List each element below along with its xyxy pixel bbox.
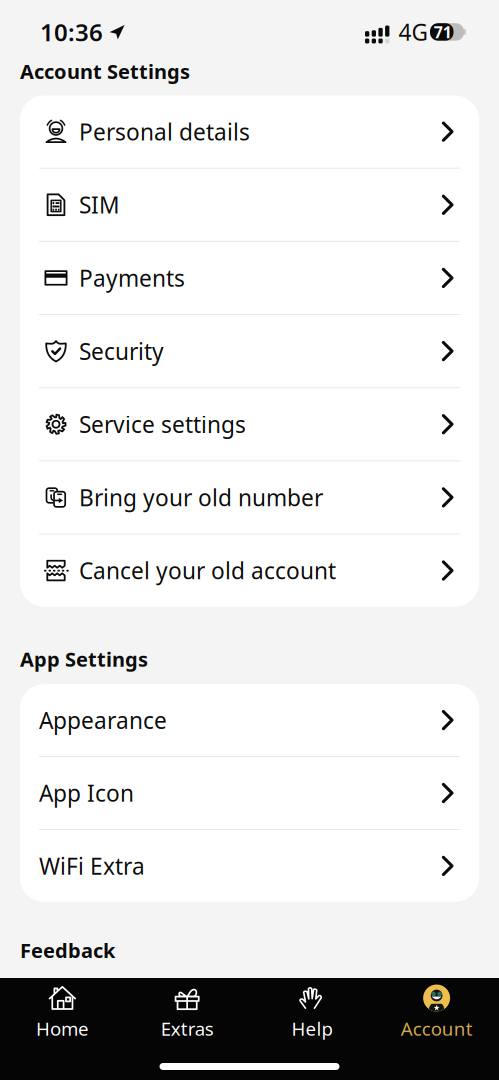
button[interactable]: Security [20,315,479,387]
staticText: Service settings [79,409,246,439]
staticText: Help [291,1016,332,1041]
staticText: Payments [79,263,185,293]
button[interactable]: App Icon [20,757,479,829]
staticText: Home [36,1016,89,1041]
button[interactable]: Bring your old number [20,461,479,533]
staticText: 71 [434,21,452,42]
button[interactable]: Help [249,985,374,1041]
button[interactable]: Extras [125,985,250,1041]
staticText: Cancel your old account [79,555,336,586]
staticText: App Settings [20,646,148,672]
button[interactable]: Cancel your old account [20,534,479,607]
staticText: App Icon [39,778,134,808]
staticText: Appearance [39,705,167,735]
button[interactable]: Home [0,985,125,1041]
staticText: Security [79,336,164,366]
staticText: 10:36 [40,16,103,48]
staticText: WiFi Extra [39,851,145,881]
staticText: Extras [161,1016,214,1041]
staticText: Personal details [79,117,250,147]
button[interactable]: WiFi Extra [20,830,479,902]
button[interactable]: Appearance [20,684,479,756]
staticText: SIM [79,190,120,220]
staticText: Account [401,1016,473,1041]
staticText: Feedback [20,937,115,963]
button[interactable]: Personal details [20,96,479,168]
staticText: 4G [398,17,428,47]
staticText: Account Settings [20,58,190,85]
button[interactable]: Service settings [20,388,479,460]
button[interactable]: Payments [20,242,479,314]
staticText: Bring your old number [79,482,323,512]
button[interactable]: SIM [20,169,479,241]
button[interactable]: Account [374,985,499,1041]
